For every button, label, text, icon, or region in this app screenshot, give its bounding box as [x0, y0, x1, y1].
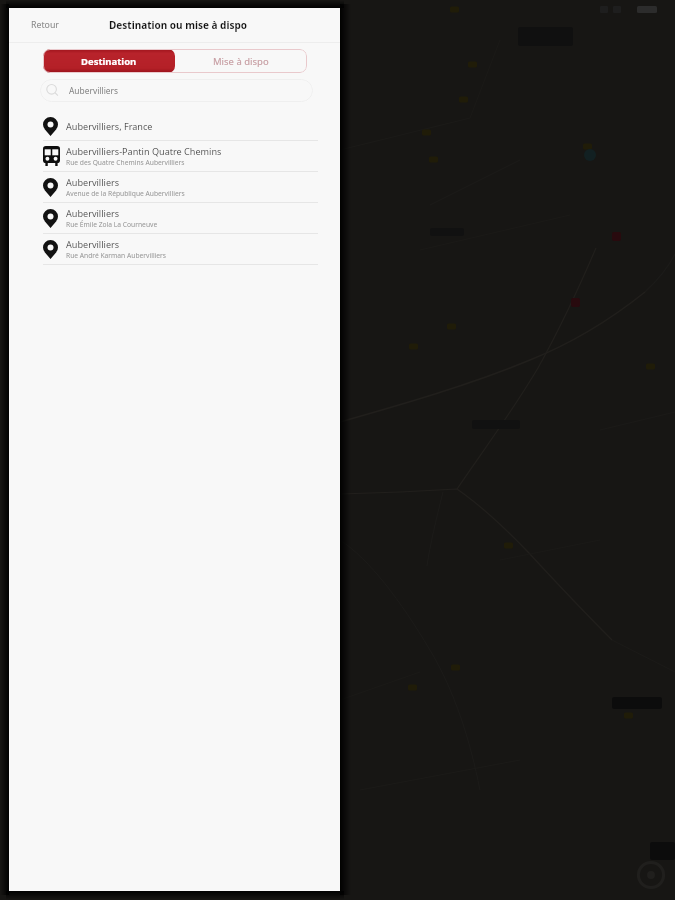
staticText: Mise à dispo: [213, 55, 269, 68]
button[interactable]: Retour: [9, 8, 72, 42]
button[interactable]: Destination: [43, 49, 175, 73]
staticText: Aubervilliers: [66, 176, 120, 188]
button[interactable]: Aubervilliers: [9, 203, 340, 234]
staticText: Avenue de la République Aubervilliers: [66, 189, 185, 198]
staticText: Rue Émile Zola La Courneuve: [66, 220, 158, 229]
staticText: Retour: [31, 19, 60, 31]
button[interactable]: Aubervilliers: [9, 234, 340, 265]
staticText: Rue des Quatre Chemins Aubervilliers: [66, 158, 185, 167]
staticText: Aubervilliers, France: [66, 120, 153, 132]
button[interactable]: Mise à dispo: [175, 49, 307, 73]
button[interactable]: My location: [635, 859, 667, 891]
button[interactable]: Aubervilliers, France: [9, 112, 340, 141]
button[interactable]: Aubervilliers: [9, 172, 340, 203]
staticText: Rue André Karman Aubervilliers: [66, 251, 167, 260]
staticText: Aubervilliers-Pantin Quatre Chemins: [66, 145, 222, 157]
staticText: Destination ou mise à dispo: [109, 18, 247, 32]
button[interactable]: Aubervilliers-Pantin Quatre Chemins: [9, 141, 340, 172]
staticText: Aubervilliers: [66, 238, 120, 250]
staticText: Aubervilliers: [69, 85, 119, 96]
button[interactable]: Aubervilliers: [40, 79, 313, 102]
staticText: Aubervilliers: [66, 207, 120, 219]
staticText: Destination: [81, 55, 137, 68]
